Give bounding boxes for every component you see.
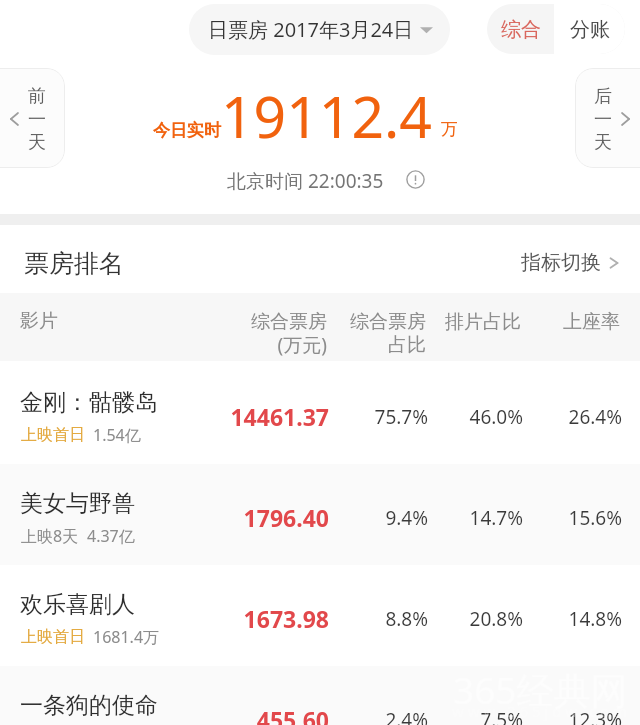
staticText: 影片 bbox=[20, 309, 58, 333]
staticText: 指标切换 bbox=[521, 250, 601, 275]
staticText: 75.7% bbox=[228, 404, 428, 430]
staticText: 19112.4 bbox=[221, 77, 432, 155]
staticText: 综合票房 (万元) bbox=[127, 310, 327, 358]
staticText: 14.7% bbox=[323, 505, 523, 531]
staticText: 今日实时 bbox=[153, 120, 221, 141]
staticText: 美女与野兽 bbox=[20, 489, 135, 518]
staticText: 一 bbox=[594, 108, 612, 131]
staticText: 455.60 bbox=[129, 704, 329, 725]
staticText: 1681.4万 bbox=[93, 626, 160, 648]
staticText: 365经典网 bbox=[453, 664, 628, 715]
staticText: 综合 bbox=[501, 17, 541, 42]
staticText: 欢乐喜剧人 bbox=[20, 590, 135, 619]
staticText: 7.5% bbox=[323, 707, 523, 725]
staticText: 日票房 2017年3月24日 bbox=[208, 16, 414, 43]
staticText: 金刚：骷髅岛 bbox=[20, 388, 158, 417]
button[interactable]: 指标切换 bbox=[521, 250, 619, 275]
button[interactable]: 综合 bbox=[487, 4, 554, 54]
staticText: 4.37亿 bbox=[87, 525, 135, 547]
staticText: 上映首日 bbox=[21, 425, 85, 445]
staticText: 综合票房 占比 bbox=[226, 310, 426, 357]
button[interactable]: 欢乐喜剧人 bbox=[0, 565, 640, 666]
staticText: 26.4% bbox=[422, 404, 622, 430]
staticText: 上映首日 bbox=[21, 627, 85, 647]
staticText: 12.3% bbox=[422, 707, 622, 725]
staticText: 排片占比 bbox=[321, 310, 521, 334]
staticText: 9.4% bbox=[228, 505, 428, 531]
staticText: 1673.98 bbox=[129, 603, 329, 634]
staticText: 票房排名 bbox=[24, 248, 124, 279]
staticText: 上映8天 bbox=[21, 525, 79, 547]
button[interactable]: 后一天 bbox=[575, 68, 640, 168]
button[interactable]: 分账 bbox=[554, 4, 625, 54]
staticText: 后 bbox=[594, 85, 612, 108]
staticText: 14461.37 bbox=[129, 401, 329, 432]
staticText: 一条狗的使命 bbox=[20, 691, 158, 720]
staticText: 分账 bbox=[570, 17, 610, 42]
staticText: 前 bbox=[28, 85, 46, 108]
staticText: 一 bbox=[28, 108, 46, 131]
staticText: 2.4% bbox=[228, 707, 428, 725]
staticText: 上座率 bbox=[420, 310, 620, 334]
staticText: 天 bbox=[594, 131, 612, 154]
button[interactable]: 美女与野兽 bbox=[0, 464, 640, 565]
staticText: 20.8% bbox=[323, 606, 523, 632]
staticText: 万 bbox=[441, 119, 458, 140]
staticText: 46.0% bbox=[323, 404, 523, 430]
staticText: w w w . 3 6 5 j d w . c o m bbox=[452, 701, 628, 721]
staticText: 8.8% bbox=[228, 606, 428, 632]
staticText: 天 bbox=[28, 131, 46, 154]
button[interactable]: 金刚：骷髅岛 bbox=[0, 363, 640, 464]
staticText: 1.54亿 bbox=[93, 424, 141, 446]
button[interactable]: 一条狗的使命 bbox=[0, 666, 640, 725]
staticText: 14.8% bbox=[422, 606, 622, 632]
staticText: 北京时间 22:00:35 bbox=[227, 168, 384, 194]
button[interactable]: 日票房 2017年3月24日 bbox=[189, 4, 450, 55]
button[interactable]: 前一天 bbox=[0, 68, 65, 168]
staticText: 15.6% bbox=[422, 505, 622, 531]
staticText: 1796.40 bbox=[129, 502, 329, 533]
